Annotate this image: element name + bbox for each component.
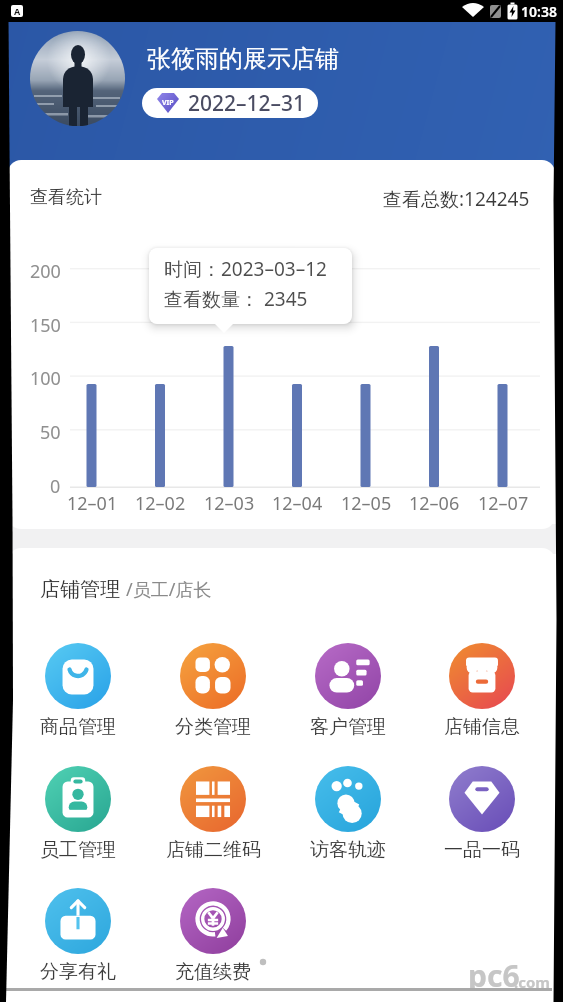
staticText: 12–03 — [204, 491, 255, 516]
button[interactable]: 分类管理 — [151, 643, 275, 743]
staticText: 时间：2023–03–12 — [164, 256, 327, 282]
staticText: 查看统计 — [30, 186, 102, 209]
staticText: 12–07 — [478, 491, 529, 516]
button[interactable]: 商品管理 — [16, 643, 140, 743]
staticText: pc6 — [468, 955, 520, 996]
staticText: 店铺信息 — [444, 715, 520, 739]
staticText: 查看数量： 2345 — [164, 286, 308, 312]
staticText: 2022–12–31 — [188, 89, 306, 118]
button[interactable]: 店铺管理 — [40, 575, 212, 602]
staticText: 12–05 — [341, 491, 392, 516]
button[interactable]: 查看统计 — [30, 186, 555, 209]
staticText: 访客轨迹 — [310, 838, 386, 862]
staticText: 分享有礼 — [40, 960, 116, 984]
staticText: 店铺二维码 — [166, 838, 261, 862]
button[interactable]: 一品一码 — [420, 766, 544, 866]
staticText: VIP — [162, 98, 174, 108]
button[interactable]: 店铺二维码 — [151, 766, 275, 866]
staticText: 0 — [50, 474, 61, 499]
staticText: 200 — [30, 259, 61, 284]
staticText: .com — [514, 972, 550, 992]
button[interactable]: 店铺信息 — [420, 643, 544, 743]
staticText: 50 — [40, 420, 61, 445]
button[interactable]: 充值续费 — [151, 888, 275, 988]
staticText: 12–04 — [272, 491, 323, 516]
staticText: 100 — [30, 366, 61, 391]
staticText: 张筱雨的展示店铺 — [147, 44, 339, 74]
staticText: /员工/店长 — [126, 577, 212, 602]
staticText: 12–02 — [135, 491, 186, 516]
staticText: 店铺管理 — [40, 575, 126, 602]
staticText: 150 — [30, 313, 61, 338]
button[interactable]: 分享有礼 — [16, 888, 140, 988]
staticText: 查看总数:124245 — [383, 186, 530, 212]
button[interactable]: 访客轨迹 — [286, 766, 410, 866]
staticText: 12–06 — [409, 491, 460, 516]
staticText: 员工管理 — [40, 838, 116, 862]
button[interactable]: VIP — [142, 88, 318, 118]
staticText: 客户管理 — [310, 715, 386, 739]
staticText: 10:38 — [521, 2, 557, 21]
button[interactable]: 客户管理 — [286, 643, 410, 743]
staticText: 分类管理 — [175, 715, 251, 739]
staticText: 商品管理 — [40, 715, 116, 739]
staticText: 一品一码 — [444, 838, 520, 862]
button[interactable] — [30, 31, 125, 126]
staticText: A — [14, 5, 21, 17]
staticText: 12–01 — [67, 491, 118, 516]
staticText: 充值续费 — [175, 960, 251, 984]
button[interactable]: 员工管理 — [16, 766, 140, 866]
